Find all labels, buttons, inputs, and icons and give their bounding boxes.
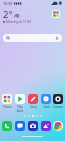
button[interactable]: Camera	[28, 121, 38, 131]
button[interactable]: Keep	[27, 94, 39, 109]
button[interactable]: Chrome	[53, 121, 63, 131]
staticText: Photos	[3, 105, 12, 109]
button[interactable]: Photos	[1, 94, 13, 109]
button[interactable]: Clock	[40, 94, 52, 109]
button[interactable]: 2°	[3, 8, 32, 25]
button[interactable]: Phone	[2, 121, 12, 131]
staticText: Clock	[43, 105, 50, 109]
staticText: Meeting at 11:00	[6, 20, 32, 24]
staticText: 10:30	[3, 1, 13, 6]
staticText: Play Store	[14, 105, 26, 113]
staticText: Camera	[53, 105, 63, 109]
staticText: Keep	[30, 105, 37, 109]
button[interactable]	[3, 34, 62, 42]
button[interactable]: Play Store	[14, 94, 26, 113]
button[interactable]: Google	[52, 10, 60, 18]
staticText: 2°	[3, 8, 13, 21]
button[interactable]: Camera	[52, 94, 64, 109]
button[interactable]: Gallery	[41, 121, 51, 131]
button[interactable]: Messages	[15, 121, 25, 131]
